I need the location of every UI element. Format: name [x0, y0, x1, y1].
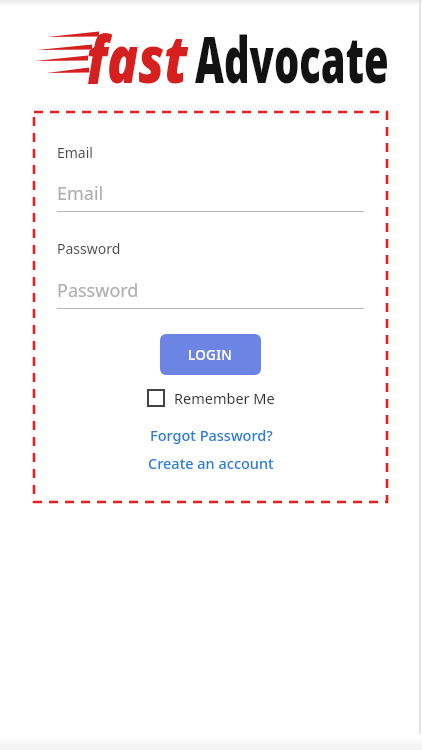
- staticText: Advocate: [195, 15, 389, 102]
- button[interactable]: Email: [57, 175, 364, 213]
- button[interactable]: LOGIN: [160, 334, 261, 375]
- button[interactable]: Forgot Password?: [150, 425, 273, 445]
- button[interactable]: Remember Me: [147, 388, 275, 408]
- button[interactable]: Create an account: [148, 453, 274, 473]
- staticText: LOGIN: [188, 346, 233, 364]
- staticText: fast: [86, 12, 188, 84]
- staticText: Email: [57, 181, 104, 206]
- staticText: Email: [57, 143, 93, 162]
- staticText: Remember Me: [174, 388, 275, 408]
- button[interactable]: Password: [57, 272, 364, 310]
- staticText: Password: [57, 239, 121, 258]
- staticText: Password: [57, 278, 139, 303]
